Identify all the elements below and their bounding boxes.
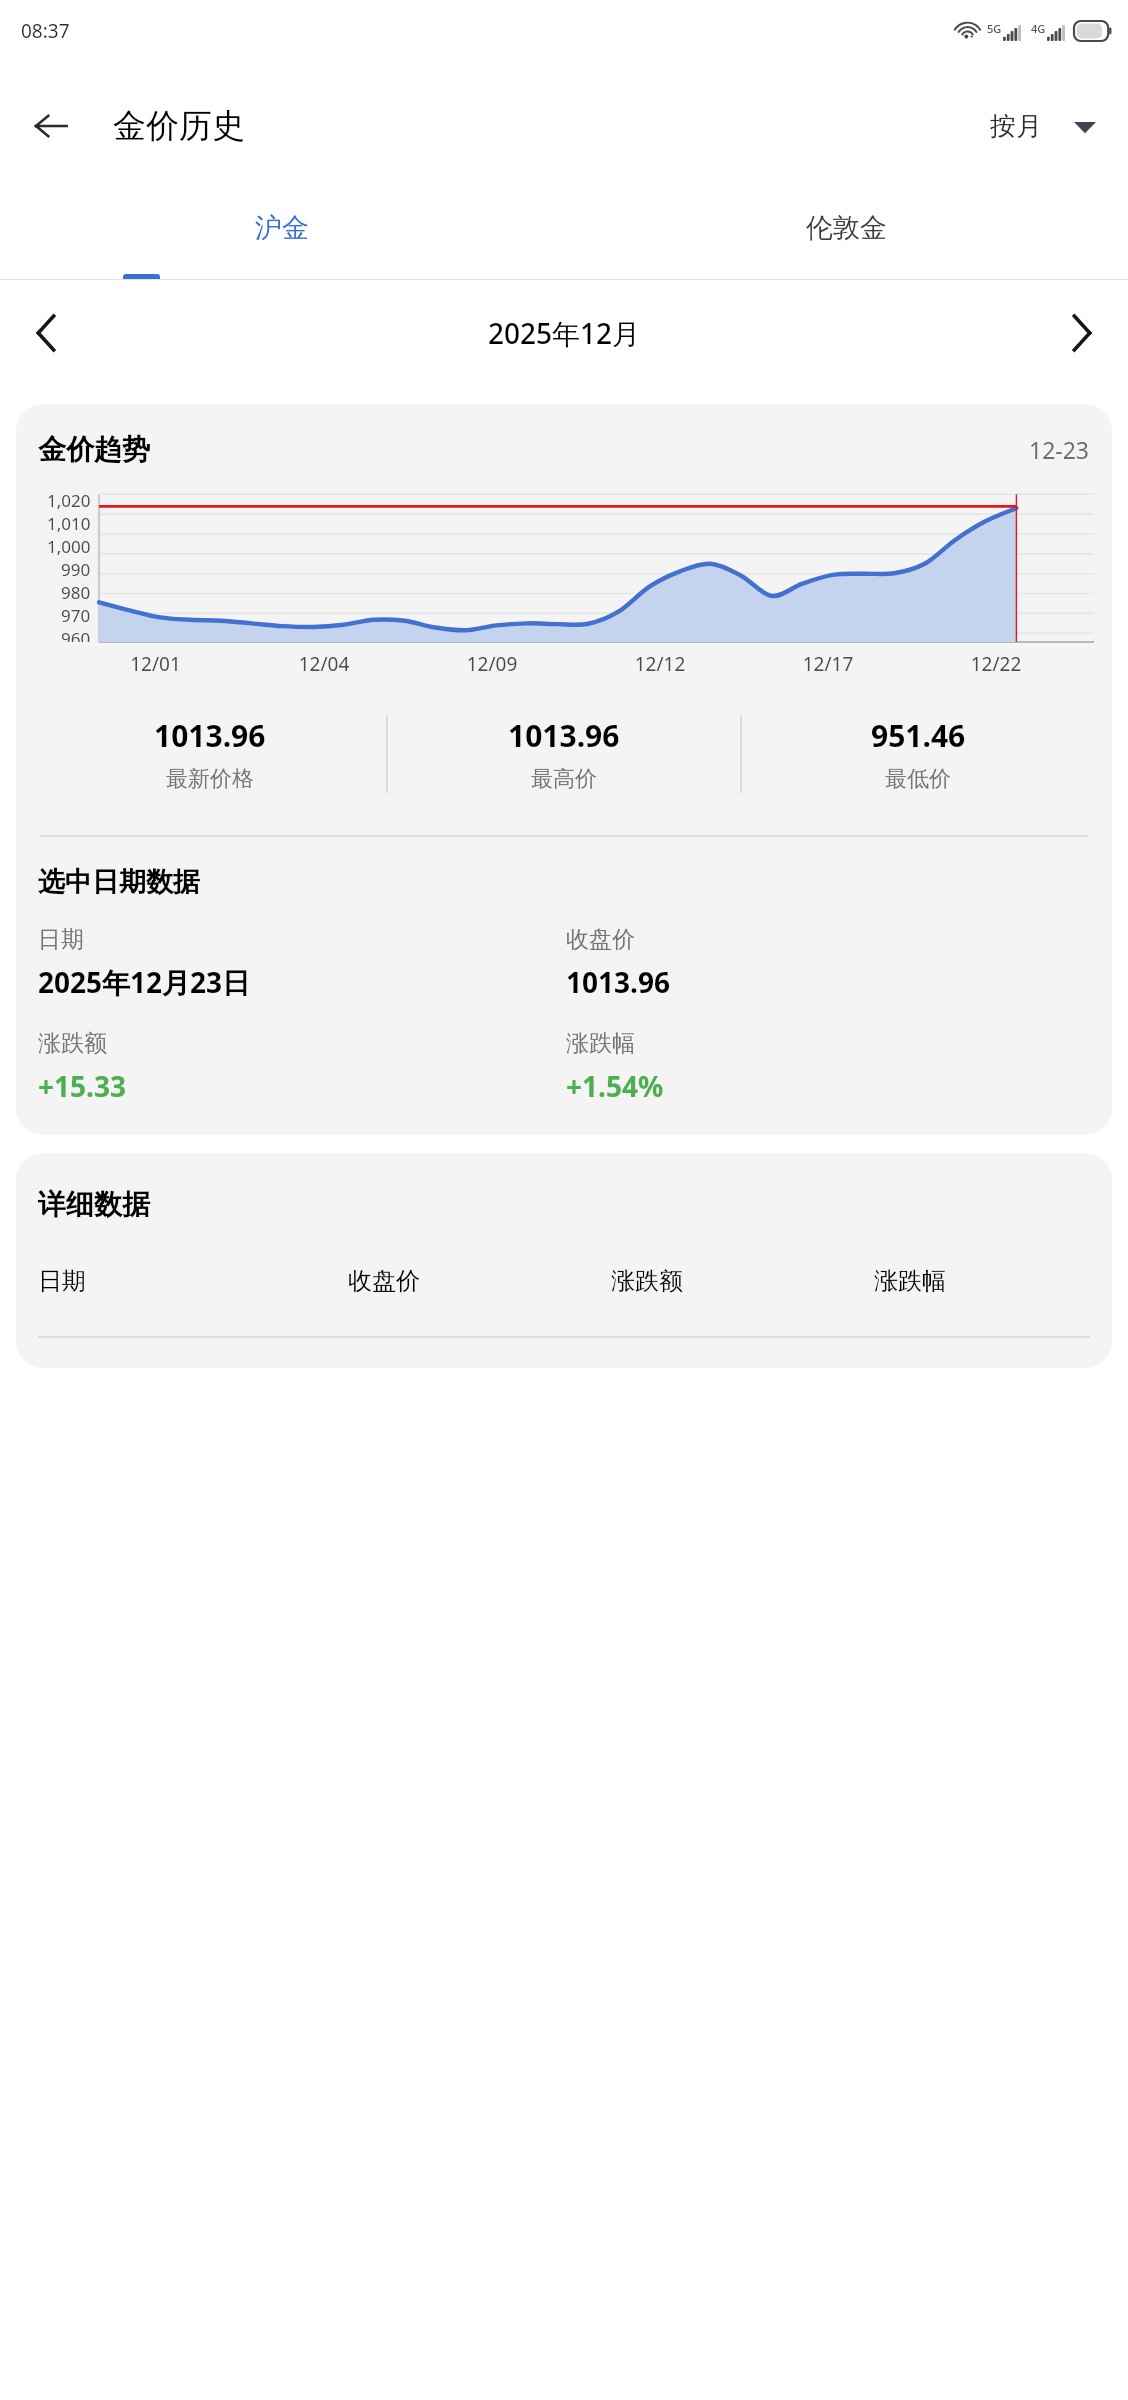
staticText: 1013.96 — [154, 715, 266, 756]
staticText: 选中日期数据 — [38, 865, 200, 899]
button[interactable]: 沪金 — [0, 190, 564, 280]
staticText: 日期 — [38, 1266, 348, 1296]
staticText: 最低价 — [885, 765, 951, 793]
staticText: +15.33 — [38, 1067, 126, 1105]
staticText: 收盘价 — [566, 925, 635, 954]
staticText: 伦敦金 — [806, 211, 887, 245]
button[interactable]: 下一月 — [1054, 305, 1110, 361]
staticText: +1.54% — [566, 1067, 664, 1105]
staticText: 最高价 — [531, 765, 597, 793]
button[interactable]: 上一月 — [18, 305, 74, 361]
staticText: 2025年12月23日 — [38, 963, 251, 1001]
staticText: 970 — [61, 604, 91, 627]
staticText: 1,000 — [47, 535, 91, 558]
staticText: 收盘价 — [348, 1266, 611, 1296]
staticText: 金价趋势 — [38, 432, 150, 467]
staticText: 最新价格 — [166, 765, 254, 793]
staticText: 1013.96 — [508, 715, 620, 756]
staticText: 1,010 — [47, 512, 91, 535]
staticText: 12/09 — [408, 651, 576, 677]
button[interactable]: 返回 — [22, 97, 80, 155]
staticText: 2025年12月 — [74, 314, 1054, 352]
staticText: 涨跌额 — [611, 1266, 874, 1296]
staticText: 951.46 — [871, 715, 966, 756]
button[interactable]: 金价趋势 — [16, 404, 1112, 1135]
staticText: 日期 — [38, 925, 84, 954]
staticText: 12/01 — [71, 651, 240, 677]
staticText: 12/17 — [744, 651, 912, 677]
staticText: 详细数据 — [38, 1187, 150, 1222]
staticText: 08:37 — [21, 18, 70, 44]
staticText: 1,020 — [47, 489, 91, 512]
staticText: 按月 — [990, 110, 1042, 143]
button[interactable]: 按月 — [982, 102, 1104, 151]
staticText: 沪金 — [255, 211, 309, 245]
staticText: 12/04 — [240, 651, 408, 677]
staticText: 1013.96 — [566, 963, 670, 1001]
staticText: 4G — [1031, 21, 1046, 36]
staticText: 12-23 — [1029, 434, 1090, 465]
staticText: 12/22 — [912, 651, 1080, 677]
button[interactable]: 详细数据 — [16, 1153, 1112, 1368]
staticText: 980 — [61, 581, 91, 604]
staticText: 12/12 — [576, 651, 744, 677]
button[interactable]: 伦敦金 — [564, 190, 1128, 280]
staticText: 960 — [61, 627, 91, 642]
staticText: 涨跌额 — [38, 1029, 107, 1058]
staticText: 5G — [987, 21, 1002, 36]
staticText: 金价历史 — [113, 105, 245, 147]
staticText: 990 — [61, 558, 91, 581]
staticText: 涨跌幅 — [874, 1266, 1090, 1296]
staticText: 涨跌幅 — [566, 1029, 635, 1058]
